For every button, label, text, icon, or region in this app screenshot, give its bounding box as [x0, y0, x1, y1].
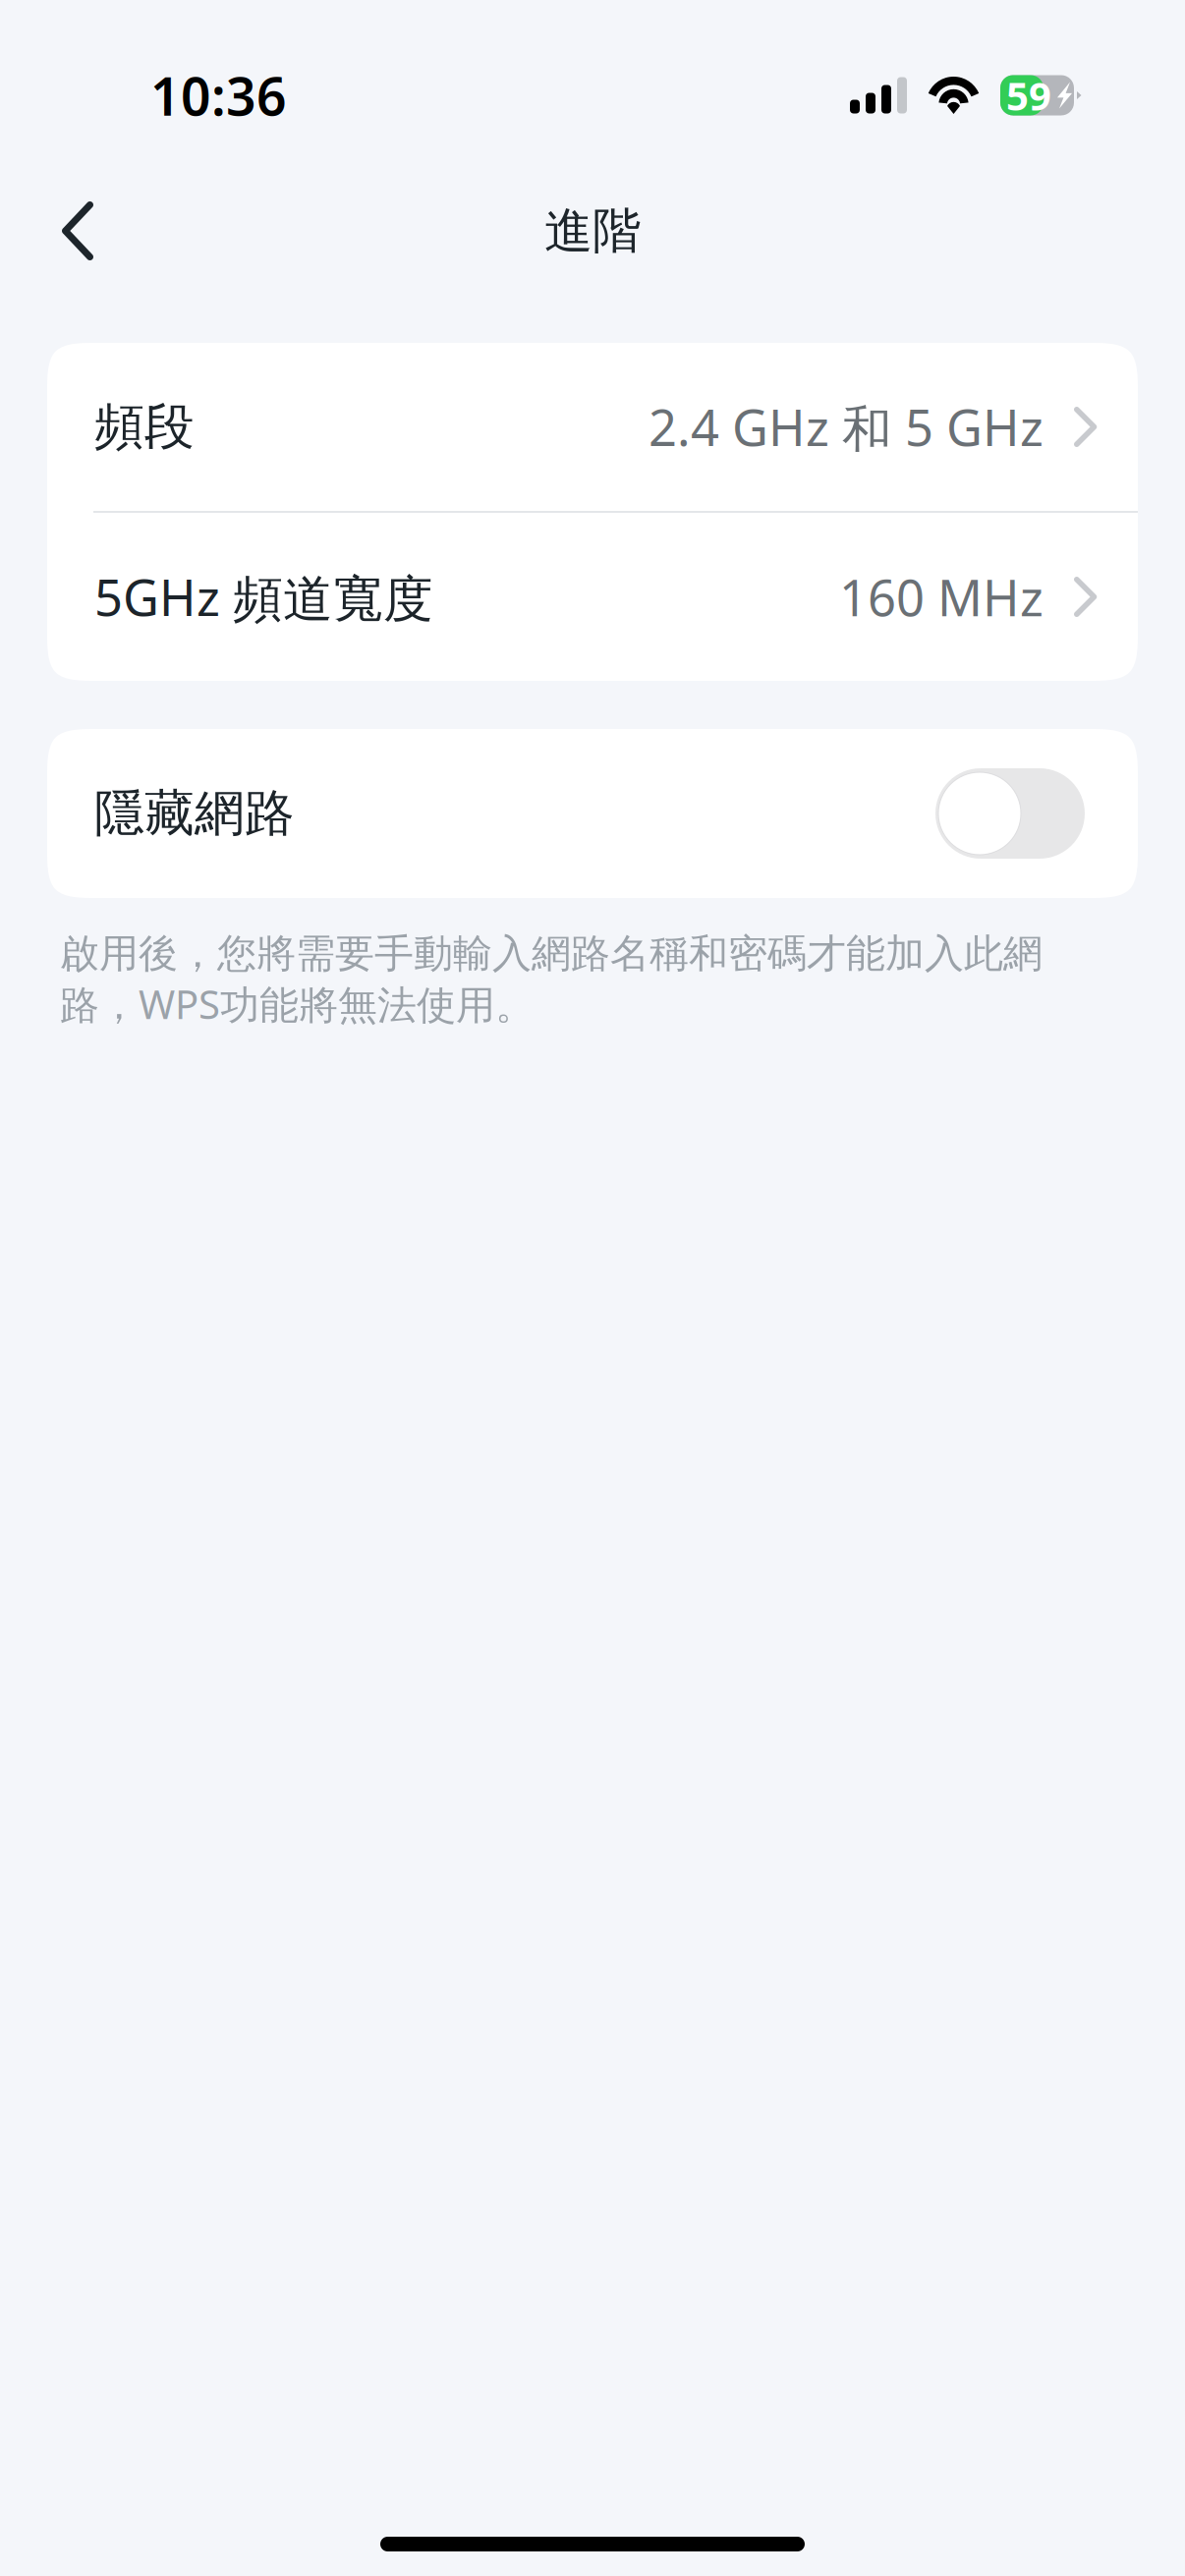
staticText: 160 MHz	[839, 564, 1044, 630]
staticText: 5GHz 頻道寬度	[94, 564, 433, 630]
button[interactable]: 隱藏網路	[935, 768, 1085, 859]
staticText: 頻段	[94, 396, 195, 457]
staticText: 啟用後，您將需要手動輸入網路名稱和密碼才能加入此網路，WPS功能將無法使用。	[60, 929, 1043, 1030]
staticText: 進階	[544, 201, 641, 261]
button[interactable]: 頻段	[47, 343, 1138, 511]
staticText: 隱藏網路	[94, 783, 295, 844]
staticText: 10:36	[150, 61, 287, 130]
staticText: 59	[1006, 69, 1051, 121]
staticText: 2.4 GHz 和 5 GHz	[649, 394, 1044, 460]
button[interactable]: 5GHz 頻道寬度	[47, 513, 1138, 681]
button[interactable]: 返回	[0, 191, 187, 271]
